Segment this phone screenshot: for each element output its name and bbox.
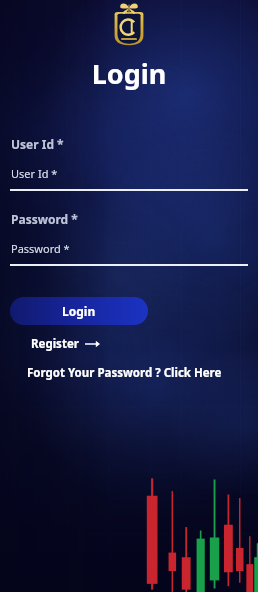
button[interactable]: Password *: [10, 241, 248, 266]
staticText: Password *: [11, 241, 70, 256]
button[interactable]: User Id *: [10, 166, 248, 191]
button[interactable]: Forgot Your Password ? Click Here: [27, 365, 222, 381]
staticText: Register: [31, 336, 79, 352]
staticText: Password *: [11, 211, 78, 227]
other: Comeback logo: [111, 2, 147, 47]
staticText: User Id *: [11, 166, 58, 181]
staticText: Forgot Your Password ? Click Here: [27, 365, 222, 381]
staticText: Login: [0, 55, 258, 92]
staticText: Login: [62, 303, 96, 319]
staticText: User Id *: [11, 136, 64, 152]
button[interactable]: Login: [10, 297, 148, 325]
button[interactable]: Register: [31, 336, 100, 352]
